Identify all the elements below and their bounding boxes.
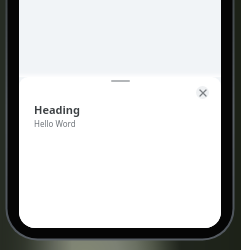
button[interactable]: Close bbox=[196, 86, 209, 99]
staticText: Heading bbox=[34, 102, 80, 117]
staticText: Hello Word bbox=[34, 118, 76, 129]
